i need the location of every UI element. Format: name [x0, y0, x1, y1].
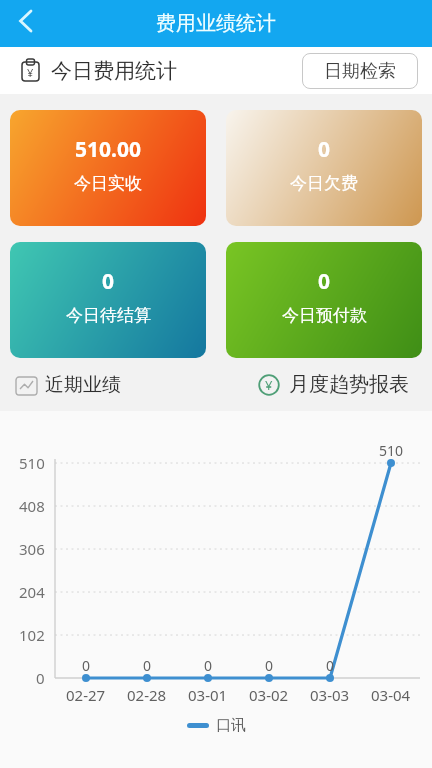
- staticText: 306: [19, 539, 45, 559]
- button[interactable]: 0: [226, 110, 422, 226]
- staticText: 0: [318, 135, 331, 164]
- staticText: ¥: [265, 376, 273, 394]
- staticText: 今日欠费: [290, 173, 358, 194]
- staticText: 03-01: [188, 685, 228, 705]
- staticText: 510: [19, 453, 45, 473]
- staticText: 0: [82, 656, 91, 675]
- button[interactable]: 0: [10, 242, 206, 358]
- staticText: 0: [102, 267, 115, 296]
- staticText: 0: [326, 656, 335, 675]
- button[interactable]: 0: [226, 242, 422, 358]
- staticText: 0: [265, 656, 274, 675]
- staticText: 0: [318, 267, 331, 296]
- staticText: 日期检索: [324, 60, 396, 83]
- staticText: 月度趋势报表: [289, 372, 409, 397]
- staticText: 102: [19, 625, 45, 645]
- staticText: 510: [379, 441, 404, 460]
- staticText: 03-02: [249, 685, 289, 705]
- staticText: 03-04: [371, 685, 411, 705]
- staticText: 02-28: [127, 685, 167, 705]
- staticText: 510.00: [75, 135, 141, 164]
- staticText: 今日待结算: [66, 305, 151, 326]
- button[interactable]: 日期检索: [302, 53, 418, 89]
- staticText: 03-03: [310, 685, 350, 705]
- button[interactable]: ¥: [258, 372, 409, 397]
- staticText: 0: [36, 668, 45, 688]
- staticText: 408: [19, 496, 45, 516]
- staticText: 近期业绩: [45, 373, 121, 397]
- staticText: 204: [19, 582, 45, 602]
- staticText: 口讯: [216, 716, 246, 735]
- staticText: 02-27: [66, 685, 106, 705]
- staticText: 0: [143, 656, 152, 675]
- staticText: 今日实收: [74, 173, 142, 194]
- button[interactable]: 510.00: [10, 110, 206, 226]
- staticText: ¥: [27, 65, 34, 80]
- button[interactable]: [0, 0, 50, 47]
- staticText: 今日费用统计: [51, 58, 177, 84]
- staticText: 费用业绩统计: [156, 11, 276, 36]
- staticText: 今日预付款: [282, 305, 367, 326]
- staticText: 0: [204, 656, 213, 675]
- button[interactable]: 近期业绩: [15, 373, 121, 397]
